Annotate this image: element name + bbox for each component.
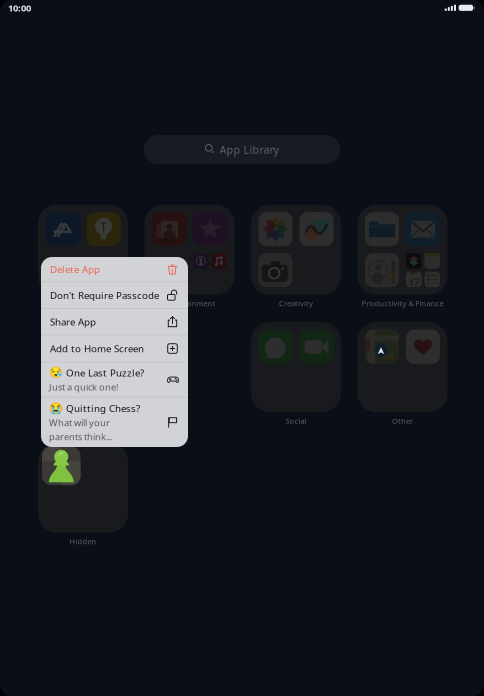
staticText: What will your: [49, 416, 110, 429]
button[interactable]: Social: [251, 322, 341, 426]
staticText: 😭: [49, 402, 63, 415]
staticText: Share App: [50, 315, 96, 328]
staticText: Just a quick one!: [49, 381, 118, 393]
staticText: 17: [409, 276, 419, 289]
button[interactable]: Creativity: [251, 205, 341, 308]
staticText: Creativity: [279, 298, 313, 308]
button[interactable]: Other: [357, 322, 447, 426]
staticText: NOV: [409, 270, 418, 276]
button[interactable]: Entertainment: [144, 205, 234, 308]
staticText: One Last Puzzle?: [66, 366, 144, 379]
staticText: Add to Home Screen: [50, 342, 144, 355]
staticText: App Library: [219, 142, 278, 157]
staticText: Social: [285, 416, 306, 426]
button[interactable]: Don't Require Passcode: [41, 282, 188, 308]
button[interactable]: NOV: [357, 205, 447, 308]
staticText: Delete App: [50, 263, 100, 276]
button[interactable]: Add to Home Screen: [41, 335, 188, 362]
staticText: Entertainment: [163, 298, 215, 308]
staticText: Quitting Chess?: [66, 402, 140, 415]
button[interactable]: 😪: [41, 362, 188, 397]
staticText: Productivity & Finance: [361, 298, 443, 308]
button[interactable]: Utilities: [38, 205, 128, 308]
button[interactable]: Share App: [41, 309, 188, 335]
staticText: 😪: [49, 366, 63, 379]
button[interactable]: App Library: [144, 135, 340, 164]
staticText: Hidden: [69, 536, 96, 546]
button[interactable]: Hidden: [38, 443, 128, 546]
staticText: 10:00: [8, 1, 31, 14]
button[interactable]: 😭: [41, 397, 188, 447]
staticText: parents think...: [49, 430, 112, 443]
staticText: Other: [392, 416, 413, 426]
staticText: Don't Require Passcode: [50, 288, 159, 302]
staticText: Utilities: [69, 298, 96, 308]
button[interactable]: Delete App: [41, 257, 188, 281]
